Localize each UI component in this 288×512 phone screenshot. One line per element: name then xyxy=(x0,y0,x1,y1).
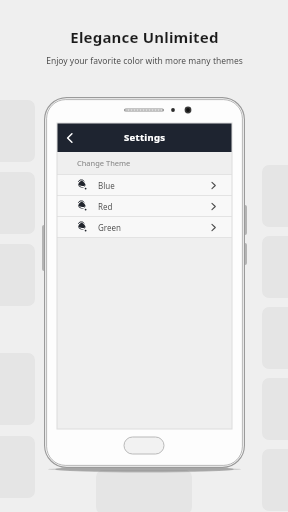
button[interactable]: Red xyxy=(57,196,232,216)
staticText: Settings xyxy=(124,131,166,144)
staticText: Elegance Unlimited xyxy=(70,27,219,47)
button[interactable]: Green xyxy=(57,217,232,237)
staticText: Green xyxy=(98,222,121,233)
button[interactable]: Back xyxy=(57,125,83,151)
button[interactable]: Home xyxy=(124,437,164,454)
button[interactable]: Blue xyxy=(57,175,232,195)
staticText: Red xyxy=(98,201,113,212)
staticText: Change Theme xyxy=(77,158,131,168)
staticText: Blue xyxy=(98,180,115,191)
staticText: Enjoy your favorite color with more many… xyxy=(46,55,243,67)
